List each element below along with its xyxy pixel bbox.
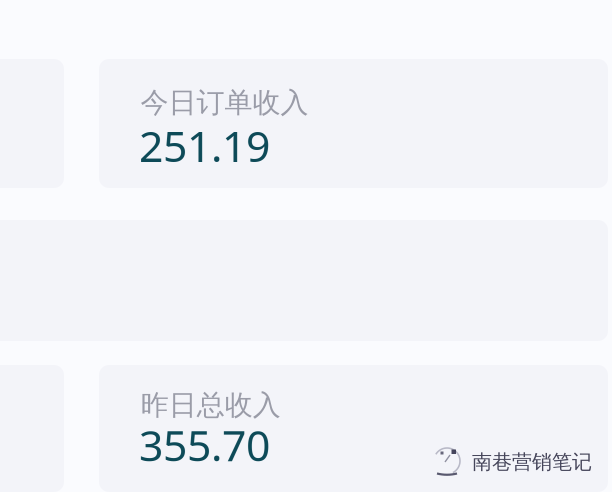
- staticText: 昨日总收入: [141, 388, 281, 422]
- staticText: 今日订单收入: [141, 85, 309, 120]
- staticText: 南巷营销笔记: [472, 450, 592, 474]
- button[interactable]: 昨日总收入: [99, 365, 608, 492]
- button[interactable]: 今日订单收入: [99, 59, 608, 188]
- staticText: 251.19: [139, 117, 270, 174]
- staticText: 355.70: [139, 416, 270, 473]
